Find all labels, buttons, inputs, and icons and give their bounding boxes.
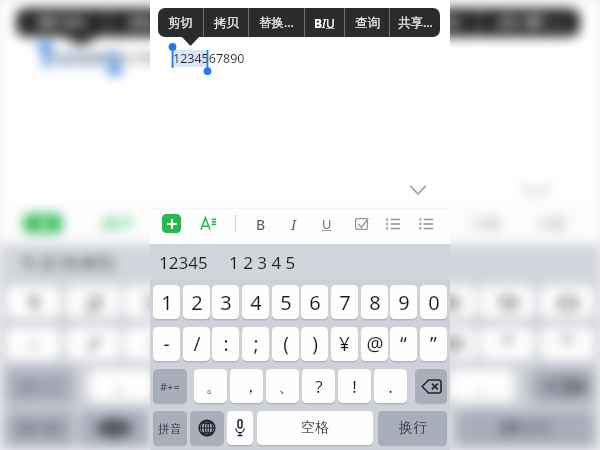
button[interactable]: Bold [251,214,271,234]
button[interactable]: 4 [242,285,269,319]
button[interactable]: 替换… [198,8,308,37]
button[interactable]: . [374,369,407,403]
button[interactable]: 剪切 [16,8,106,37]
button[interactable]: Bold [202,214,242,234]
button[interactable]: Text style [98,214,136,233]
button[interactable]: ¥ [362,327,416,361]
button[interactable]: Italic [268,214,308,234]
button[interactable]: 1 [153,285,180,319]
button[interactable]: “ [480,327,534,361]
button[interactable]: Hide keyboard [512,180,560,200]
button[interactable]: . [448,369,514,403]
button[interactable]: 共享… [480,8,580,37]
button[interactable]: 8 [361,285,388,319]
button[interactable]: ( [244,327,298,361]
button[interactable]: Voice input [154,411,206,445]
button[interactable]: 共享… [390,8,440,37]
button[interactable]: 1 [6,285,60,319]
button[interactable]: Backspace [530,369,594,403]
button[interactable]: : [212,327,239,361]
button[interactable]: - [6,327,60,361]
button[interactable]: ( [272,327,299,361]
button[interactable]: - [153,327,180,361]
button[interactable]: 6 [302,285,356,319]
button[interactable]: 8 [422,285,476,319]
button[interactable]: B [310,8,388,37]
button[interactable]: Checklist [352,214,372,234]
button[interactable]: 4 [184,285,238,319]
button[interactable]: 7 [331,285,358,319]
button[interactable]: Bulleted list [416,214,436,234]
button[interactable]: 换行 [456,411,594,445]
button[interactable]: / [183,327,210,361]
button[interactable]: / [66,327,120,361]
button[interactable]: 拼音 [153,411,187,445]
button[interactable]: Underline [334,214,374,234]
button[interactable]: ! [376,369,442,403]
button[interactable]: ” [420,327,447,361]
button[interactable]: Hide keyboard [406,180,430,200]
button[interactable]: 替换… [249,8,304,37]
button[interactable]: 。 [88,369,154,403]
button[interactable]: 7 [362,285,416,319]
button[interactable]: ¥ [331,327,358,361]
button[interactable]: Backspace [415,369,447,403]
button[interactable]: Text style [199,214,218,233]
button[interactable]: 1 2 3 4 5 [152,251,298,274]
button[interactable]: 0 [420,285,447,319]
button[interactable]: Numbered list [466,214,506,234]
button[interactable]: Numbered list [383,214,403,234]
button[interactable]: 拷贝 [108,8,196,37]
button[interactable]: ) [301,327,328,361]
button[interactable]: 2 [183,285,210,319]
button[interactable]: ? [304,369,370,403]
button[interactable]: “ [390,327,417,361]
button[interactable]: 5 [272,285,299,319]
button[interactable]: 2 [66,285,120,319]
button[interactable]: ， [230,369,263,403]
button[interactable]: 拼音 [6,411,74,445]
button[interactable]: @ [361,327,388,361]
button[interactable]: ) [302,327,356,361]
button[interactable]: 1 2 3 4 5 [226,251,299,274]
button[interactable]: 3 [212,285,239,319]
button[interactable]: 12345 [156,251,211,274]
button[interactable]: ! [338,369,371,403]
button[interactable]: ; [184,327,238,361]
button[interactable]: Insert [24,214,62,233]
button[interactable]: ? [302,369,335,403]
button[interactable]: 6 [301,285,328,319]
button[interactable]: 12345 [12,251,122,274]
button[interactable]: @ [422,327,476,361]
button[interactable]: 0 [540,285,594,319]
button[interactable]: Checklist [404,214,444,234]
button[interactable]: Change language [80,411,148,445]
button[interactable]: Change language [190,411,224,445]
button[interactable]: #+= [153,369,187,403]
button[interactable]: 9 [480,285,534,319]
button[interactable]: 、 [232,369,298,403]
button[interactable]: Voice input [227,411,253,445]
button[interactable]: B [305,8,344,37]
button[interactable]: 3 [124,285,178,319]
button[interactable]: 换行 [378,411,447,445]
button[interactable]: 拷贝 [204,8,248,37]
button[interactable]: ， [160,369,226,403]
button[interactable]: Insert [162,214,181,233]
button[interactable]: 查询 [345,8,389,37]
button[interactable]: Italic [284,214,304,234]
button[interactable]: 剪切 [158,8,203,37]
button[interactable]: Underline [317,214,337,234]
button[interactable]: ” [540,327,594,361]
button[interactable]: 。 [194,369,227,403]
button[interactable]: : [124,327,178,361]
button[interactable]: 空格 [214,411,446,445]
button[interactable]: 9 [390,285,417,319]
button[interactable]: Bulleted list [532,214,572,234]
button[interactable]: 、 [266,369,299,403]
button[interactable]: ; [242,327,269,361]
button[interactable]: #+= [6,369,74,403]
button[interactable]: 查询 [390,8,478,37]
button[interactable]: 5 [244,285,298,319]
button[interactable]: 空格 [257,411,373,445]
